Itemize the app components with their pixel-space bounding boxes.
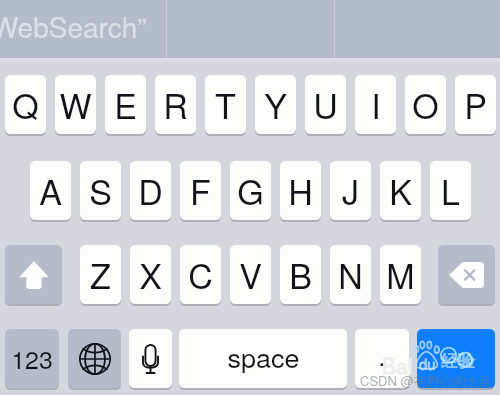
button[interactable]: S: [80, 161, 121, 220]
button[interactable]: N: [330, 245, 371, 304]
button[interactable]: [167, 0, 334, 59]
button[interactable]: F: [180, 161, 221, 220]
button[interactable]: Y: [255, 75, 296, 134]
button[interactable]: O: [405, 75, 446, 134]
button[interactable]: G: [230, 161, 271, 220]
button[interactable]: Next keyboard: [68, 329, 121, 388]
button[interactable]: “WebSearch”: [0, 0, 166, 59]
staticText: space: [227, 337, 300, 376]
button[interactable]: X: [130, 245, 171, 304]
button[interactable]: L: [430, 161, 471, 220]
button[interactable]: H: [280, 161, 321, 220]
staticText: M: [386, 250, 415, 299]
staticText: Q: [12, 80, 39, 129]
staticText: F: [190, 166, 211, 215]
staticText: X: [139, 250, 162, 299]
staticText: 经验: [441, 351, 475, 372]
staticText: N: [338, 250, 363, 299]
staticText: U: [313, 80, 338, 129]
button[interactable]: .: [355, 329, 409, 388]
button[interactable]: [335, 0, 500, 59]
staticText: O: [412, 80, 439, 129]
button[interactable]: Shift: [5, 245, 62, 304]
button[interactable]: 123: [5, 329, 59, 388]
staticText: K: [389, 166, 412, 215]
staticText: I: [371, 80, 381, 129]
staticText: CSDN @有野心的士兵: [360, 371, 492, 390]
staticText: S: [89, 166, 112, 215]
button[interactable]: U: [305, 75, 346, 134]
staticText: “WebSearch”: [0, 6, 147, 46]
staticText: G: [237, 166, 264, 215]
staticText: V: [239, 250, 262, 299]
staticText: du: [419, 353, 436, 374]
button[interactable]: A: [30, 161, 71, 220]
staticText: W: [59, 80, 92, 129]
button[interactable]: P: [455, 75, 496, 134]
staticText: T: [215, 80, 236, 129]
staticText: J: [342, 166, 359, 215]
button[interactable]: T: [205, 75, 246, 134]
button[interactable]: I: [355, 75, 396, 134]
button[interactable]: space: [179, 329, 347, 388]
button[interactable]: Q: [5, 75, 46, 134]
button[interactable]: J: [330, 161, 371, 220]
staticText: Z: [90, 250, 111, 299]
staticText: D: [138, 166, 163, 215]
staticText: .: [378, 335, 386, 374]
button[interactable]: Search: [417, 329, 495, 388]
staticText: 123: [11, 340, 53, 376]
button[interactable]: M: [380, 245, 421, 304]
staticText: C: [188, 250, 213, 299]
button[interactable]: C: [180, 245, 221, 304]
staticText: Y: [264, 80, 287, 129]
button[interactable]: W: [55, 75, 96, 134]
button[interactable]: Z: [80, 245, 121, 304]
staticText: R: [163, 80, 188, 129]
staticText: Bai: [382, 350, 413, 380]
staticText: E: [114, 80, 137, 129]
button[interactable]: E: [105, 75, 146, 134]
staticText: H: [288, 166, 313, 215]
button[interactable]: R: [155, 75, 196, 134]
button[interactable]: K: [380, 161, 421, 220]
staticText: B: [289, 250, 312, 299]
staticText: A: [39, 166, 62, 215]
button[interactable]: Dictation: [129, 329, 172, 388]
button[interactable]: D: [130, 161, 171, 220]
staticText: P: [464, 80, 487, 129]
button[interactable]: B: [280, 245, 321, 304]
button[interactable]: Backspace: [438, 245, 495, 304]
button[interactable]: V: [230, 245, 271, 304]
staticText: L: [441, 166, 460, 215]
